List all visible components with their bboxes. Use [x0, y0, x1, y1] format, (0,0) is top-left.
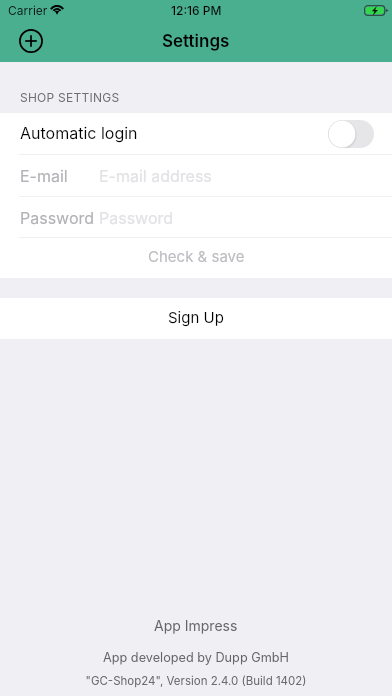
staticText: Password — [20, 208, 95, 227]
button[interactable]: E-mail — [0, 155, 392, 196]
staticText: Check & save — [148, 247, 245, 265]
button[interactable]: Password — [0, 197, 392, 237]
staticText: Carrier — [8, 3, 48, 18]
staticText: E-mail — [20, 166, 68, 185]
staticText: E-mail address — [99, 166, 212, 185]
button[interactable]: Automatic login — [0, 113, 392, 154]
staticText: Password — [99, 208, 174, 227]
button[interactable]: Add — [14, 24, 48, 58]
button[interactable]: Automatic login toggle — [328, 120, 374, 148]
staticText: App Impress — [154, 617, 238, 634]
staticText: SHOP SETTINGS — [20, 90, 120, 105]
staticText: 12:16 PM — [171, 3, 222, 18]
staticText: Settings — [162, 31, 230, 52]
button[interactable]: App Impress — [0, 607, 392, 637]
button[interactable]: Check & save — [0, 238, 392, 278]
staticText: App developed by Dupp GmbH — [0, 650, 392, 665]
staticText: Sign Up — [168, 308, 224, 326]
button[interactable]: Sign Up — [0, 298, 392, 339]
staticText: "GC-Shop24", Version 2.4.0 (Build 1402) — [0, 674, 392, 688]
staticText: Automatic login — [20, 123, 138, 142]
